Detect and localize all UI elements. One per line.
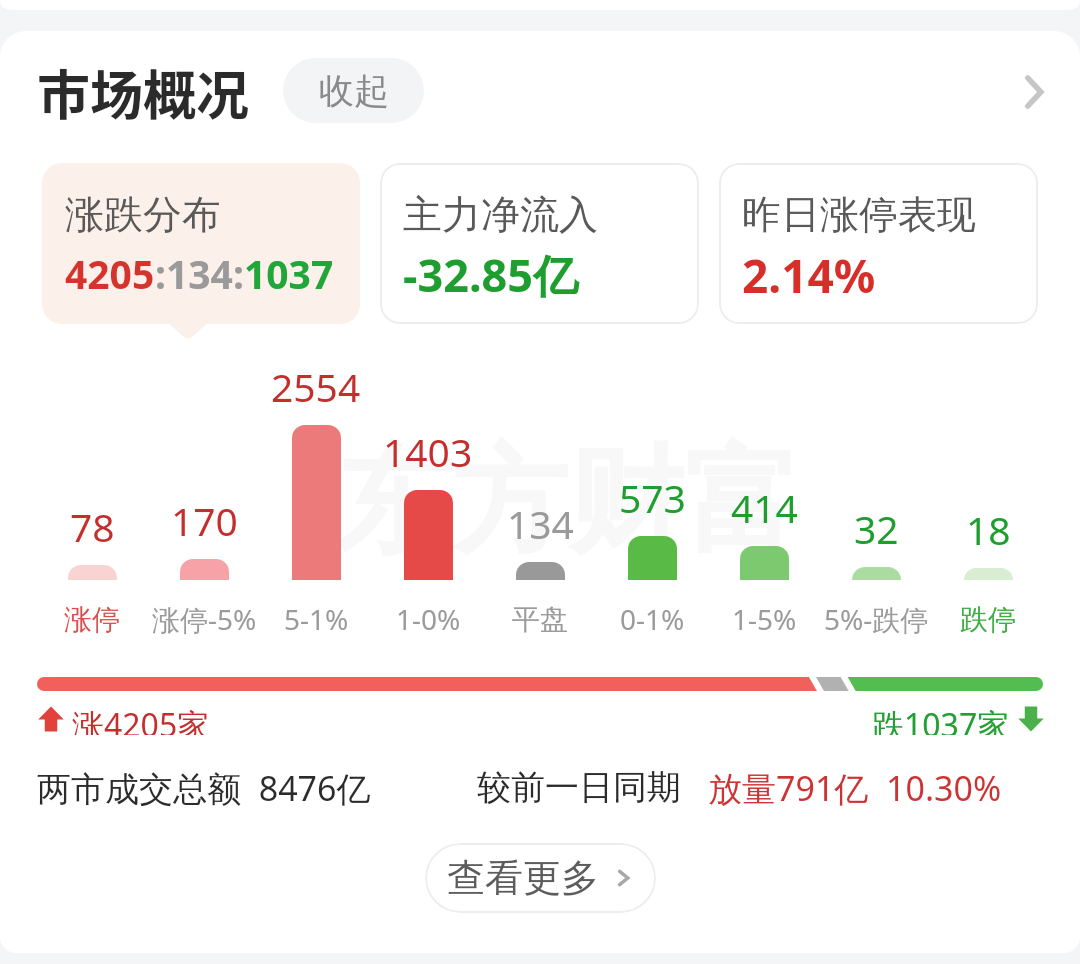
button[interactable]: 收起: [283, 58, 424, 123]
staticText: 涨停-5%: [152, 600, 257, 638]
staticText: 平盘: [512, 602, 568, 637]
staticText: :: [233, 247, 244, 300]
staticText: 昨日涨停表现: [742, 190, 976, 239]
button[interactable]: 0-1% 573: [596, 344, 708, 644]
staticText: 5%-跌停: [824, 600, 929, 638]
staticText: 32: [854, 502, 899, 548]
staticText: 4205: [65, 247, 155, 300]
staticText: 1403: [383, 425, 473, 471]
button[interactable]: 平盘 134: [484, 344, 596, 644]
button[interactable]: 昨日涨停表现: [719, 163, 1038, 324]
staticText: 5-1%: [284, 600, 349, 638]
button[interactable]: 涨停 78: [36, 344, 148, 644]
staticText: 东方财富: [336, 429, 800, 575]
staticText: 涨跌分布: [65, 190, 221, 239]
staticText: 1-0%: [396, 600, 461, 638]
staticText: 两市成交总额 8476亿: [37, 765, 371, 809]
staticText: 414: [731, 481, 798, 527]
staticText: 0-1%: [620, 600, 685, 638]
staticText: 2554: [271, 360, 361, 406]
staticText: 收起: [319, 69, 389, 113]
staticText: 涨停: [64, 602, 120, 637]
button[interactable]: 5-1% 2554: [260, 344, 372, 644]
staticText: 134: [166, 247, 233, 300]
staticText: 市场概况: [37, 54, 249, 124]
staticText: 2.14%: [742, 244, 876, 307]
button[interactable]: 涨跌分布: [42, 163, 360, 324]
button[interactable]: 1-0% 1403: [372, 344, 484, 644]
staticText: 跌1037家: [872, 703, 1010, 735]
staticText: 较前一日同期: [477, 766, 681, 809]
staticText: 134: [507, 497, 574, 543]
staticText: 170: [171, 494, 238, 540]
button[interactable]: 涨停-5% 170: [148, 344, 260, 644]
button[interactable]: 查看更多: [425, 843, 656, 913]
staticText: 涨4205家: [72, 703, 210, 735]
staticText: 18: [966, 503, 1011, 549]
staticText: 查看更多: [447, 854, 599, 902]
staticText: 573: [619, 471, 686, 517]
button[interactable]: 1-5% 414: [708, 344, 820, 644]
staticText: 主力净流入: [403, 190, 598, 239]
button[interactable]: 跌停 18: [932, 344, 1044, 644]
button[interactable]: 5%-跌停 32: [820, 344, 932, 644]
staticText: -32.85亿: [403, 244, 579, 305]
staticText: 1-5%: [732, 600, 797, 638]
button[interactable]: 主力净流入: [380, 163, 699, 324]
staticText: 跌停: [960, 602, 1016, 637]
staticText: 1037: [244, 247, 334, 300]
staticText: 78: [70, 500, 115, 546]
button[interactable]: 查看市场概况: [995, 54, 1071, 130]
staticText: :: [155, 247, 166, 300]
staticText: 放量791亿 10.30%: [708, 765, 1002, 809]
